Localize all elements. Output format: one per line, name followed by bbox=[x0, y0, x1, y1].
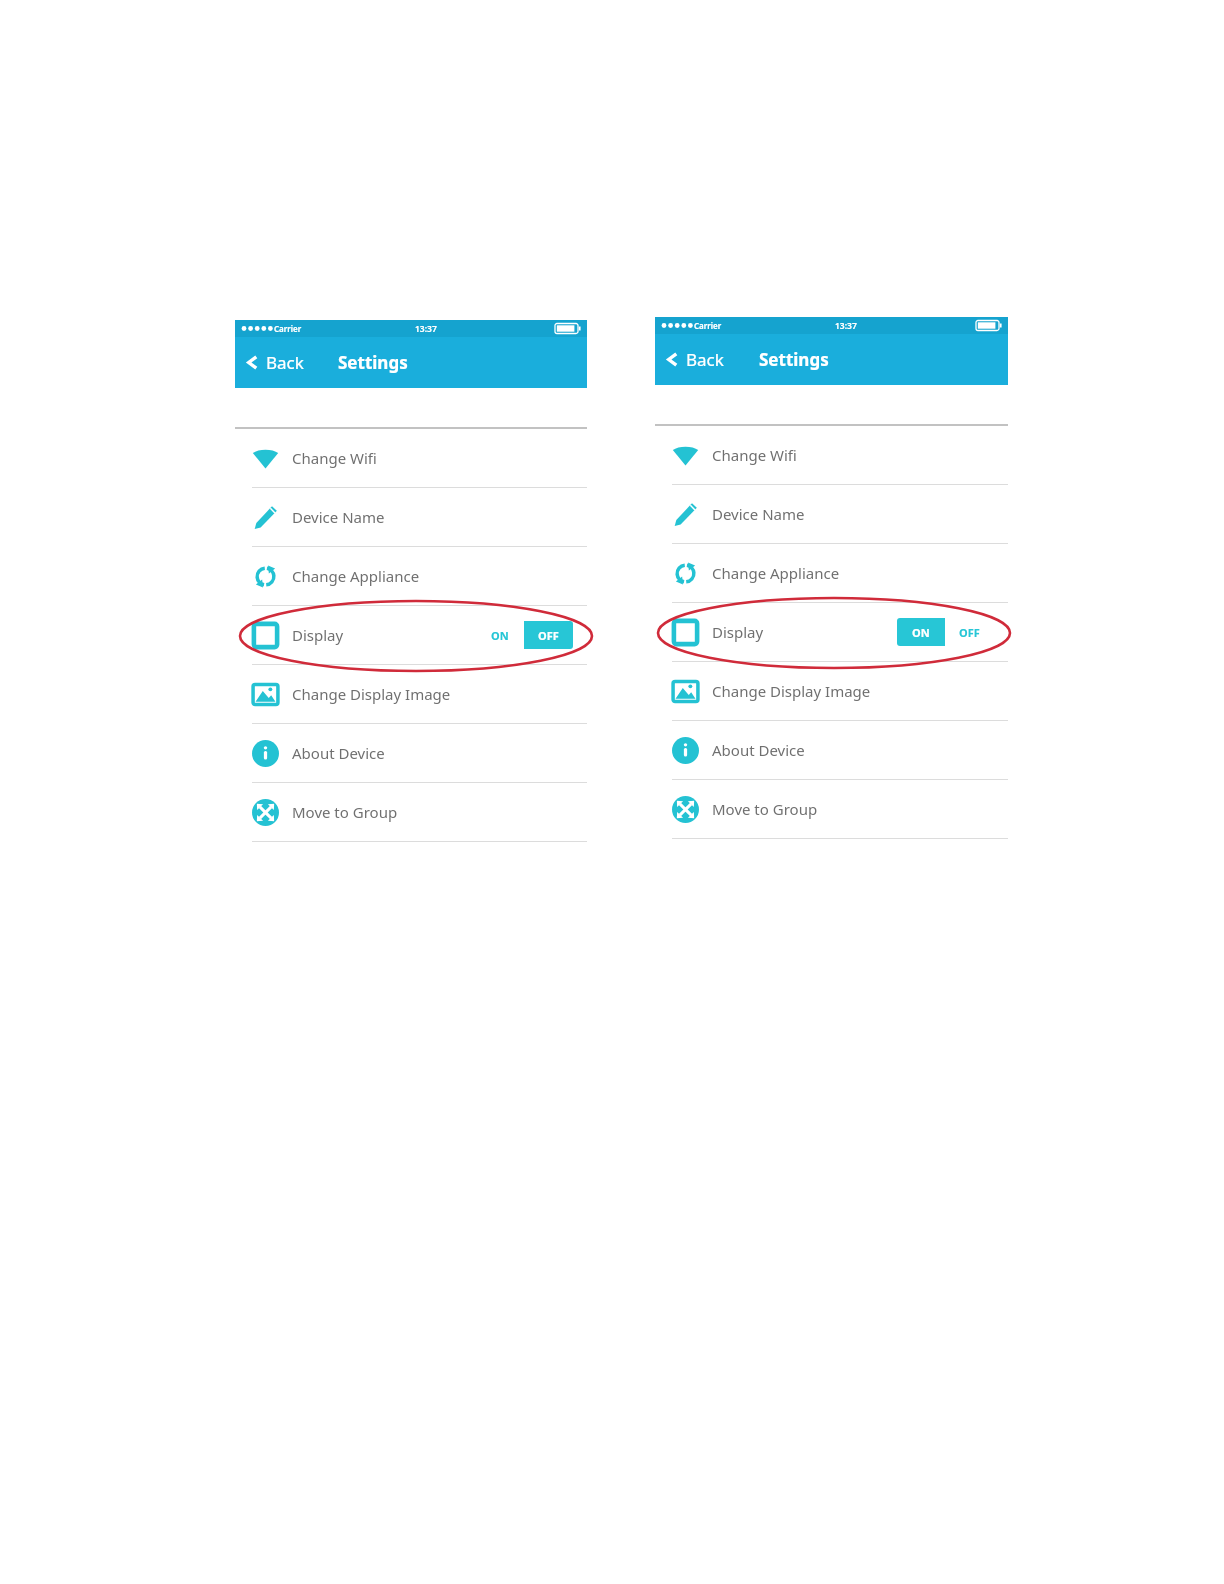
button[interactable]: Change appliance bbox=[235, 547, 587, 605]
button[interactable]: Back bbox=[655, 340, 734, 379]
staticText: Device Name bbox=[292, 507, 385, 527]
staticText: Back bbox=[266, 351, 304, 374]
button[interactable]: Display bbox=[655, 603, 1008, 661]
staticText: Display bbox=[712, 622, 764, 642]
button[interactable]: Edit bbox=[235, 488, 587, 546]
button[interactable]: Back bbox=[235, 343, 314, 382]
button[interactable]: Edit bbox=[655, 485, 1008, 543]
other: Display bbox=[672, 619, 699, 646]
staticText: OFF bbox=[538, 628, 559, 643]
staticText: OFF bbox=[959, 625, 980, 640]
staticText: Settings bbox=[338, 351, 408, 374]
staticText: Change Wifi bbox=[292, 448, 377, 468]
other: Wifi bbox=[672, 442, 699, 469]
other: Change appliance bbox=[672, 560, 699, 587]
staticText: Carrier bbox=[694, 320, 722, 331]
staticText: Settings bbox=[759, 348, 829, 371]
staticText: Move to Group bbox=[292, 802, 398, 822]
other: Edit bbox=[252, 504, 279, 531]
other: Change appliance bbox=[252, 563, 279, 590]
button[interactable]: Display bbox=[235, 606, 587, 664]
other: Move to group bbox=[672, 796, 699, 823]
staticText: Change Appliance bbox=[292, 566, 420, 586]
button[interactable]: Change display image bbox=[235, 665, 587, 723]
other: Move to group bbox=[252, 799, 279, 826]
other: About device bbox=[672, 737, 699, 764]
staticText: 13:37 bbox=[835, 320, 857, 332]
staticText: 13:37 bbox=[415, 323, 437, 335]
other: Change display image bbox=[252, 681, 279, 708]
other: Wifi bbox=[252, 445, 279, 472]
other: About device bbox=[252, 740, 279, 767]
button[interactable]: ON bbox=[476, 621, 573, 649]
button[interactable]: Change appliance bbox=[655, 544, 1008, 602]
button[interactable]: Move to group bbox=[655, 780, 1008, 838]
staticText: About Device bbox=[712, 740, 805, 760]
staticText: Change Wifi bbox=[712, 445, 797, 465]
other: Annotation highlight bbox=[240, 601, 592, 671]
button[interactable]: Change display image bbox=[655, 662, 1008, 720]
button[interactable]: Wifi bbox=[655, 426, 1008, 484]
staticText: Change Appliance bbox=[712, 563, 840, 583]
other: Back bbox=[663, 350, 682, 369]
staticText: ON bbox=[912, 625, 930, 640]
staticText: ON bbox=[491, 628, 509, 643]
button[interactable]: Move to group bbox=[235, 783, 587, 841]
other: Back bbox=[243, 353, 262, 372]
staticText: Change Display Image bbox=[292, 684, 451, 704]
other: Edit bbox=[672, 501, 699, 528]
button[interactable]: About device bbox=[235, 724, 587, 782]
staticText: Display bbox=[292, 625, 344, 645]
button[interactable]: Wifi bbox=[235, 429, 587, 487]
staticText: Back bbox=[686, 348, 724, 371]
button[interactable]: ON bbox=[897, 618, 994, 646]
staticText: About Device bbox=[292, 743, 385, 763]
other: Change display image bbox=[672, 678, 699, 705]
button[interactable]: About device bbox=[655, 721, 1008, 779]
other: Display bbox=[252, 622, 279, 649]
staticText: Device Name bbox=[712, 504, 805, 524]
other: Annotation highlight bbox=[658, 598, 1010, 668]
staticText: Change Display Image bbox=[712, 681, 871, 701]
staticText: Carrier bbox=[274, 323, 302, 334]
staticText: Move to Group bbox=[712, 799, 818, 819]
